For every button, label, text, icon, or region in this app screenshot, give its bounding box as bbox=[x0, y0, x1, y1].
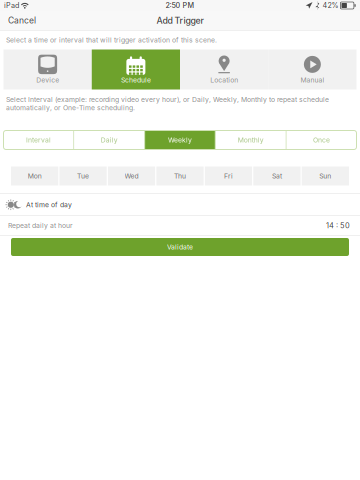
button[interactable]: Repeat daily at hour bbox=[0, 216, 360, 235]
button[interactable]: Interval bbox=[3, 130, 73, 149]
staticText: At time of day bbox=[26, 201, 72, 209]
staticText: Validate bbox=[167, 243, 193, 251]
button[interactable]: Cancel bbox=[0, 12, 44, 29]
staticText: Location bbox=[210, 76, 238, 84]
staticText: Mon bbox=[28, 172, 42, 180]
button[interactable]: At time of day bbox=[0, 194, 360, 215]
button[interactable]: Sun bbox=[302, 166, 349, 185]
staticText: Device bbox=[36, 76, 59, 84]
staticText: Once bbox=[313, 136, 330, 144]
staticText: 2:50 PM bbox=[165, 1, 194, 10]
staticText: Cancel bbox=[8, 15, 36, 26]
staticText: Wed bbox=[124, 172, 138, 180]
staticText: Sat bbox=[272, 172, 282, 180]
button[interactable]: Validate bbox=[11, 238, 349, 256]
button[interactable]: Fri bbox=[205, 166, 252, 185]
staticText: Sun bbox=[319, 172, 331, 180]
staticText: Tue bbox=[77, 172, 89, 180]
staticText: Interval bbox=[26, 136, 51, 144]
staticText: 42% bbox=[322, 1, 338, 10]
staticText: Weekly bbox=[168, 136, 192, 144]
button[interactable]: Device bbox=[3, 49, 92, 89]
button[interactable]: Sat bbox=[253, 166, 301, 185]
button[interactable]: Once bbox=[287, 130, 356, 149]
staticText: Fri bbox=[224, 172, 233, 180]
staticText: Select a time or interval that will trig… bbox=[6, 36, 217, 44]
staticText: Schedule bbox=[121, 76, 151, 84]
button[interactable]: Wed bbox=[108, 166, 155, 185]
button[interactable]: Location bbox=[180, 49, 268, 89]
button[interactable]: Manual bbox=[268, 49, 356, 89]
staticText: Daily bbox=[101, 136, 118, 144]
button[interactable]: Mon bbox=[11, 166, 58, 185]
staticText: Repeat daily at hour bbox=[8, 221, 73, 230]
staticText: 14 : 50 bbox=[326, 221, 350, 230]
staticText: iPad bbox=[4, 1, 19, 10]
button[interactable]: Daily bbox=[74, 130, 144, 149]
button[interactable]: Tue bbox=[59, 166, 107, 185]
button[interactable]: Schedule bbox=[92, 49, 180, 89]
button[interactable]: Thu bbox=[156, 166, 204, 185]
staticText: Select Interval (example: recording vide… bbox=[6, 95, 329, 112]
button[interactable]: Weekly bbox=[145, 130, 215, 149]
staticText: Thu bbox=[174, 172, 186, 180]
staticText: Manual bbox=[300, 76, 324, 84]
staticText: Add Trigger bbox=[156, 15, 203, 26]
button[interactable]: Monthly bbox=[216, 130, 286, 149]
staticText: Monthly bbox=[238, 136, 264, 144]
